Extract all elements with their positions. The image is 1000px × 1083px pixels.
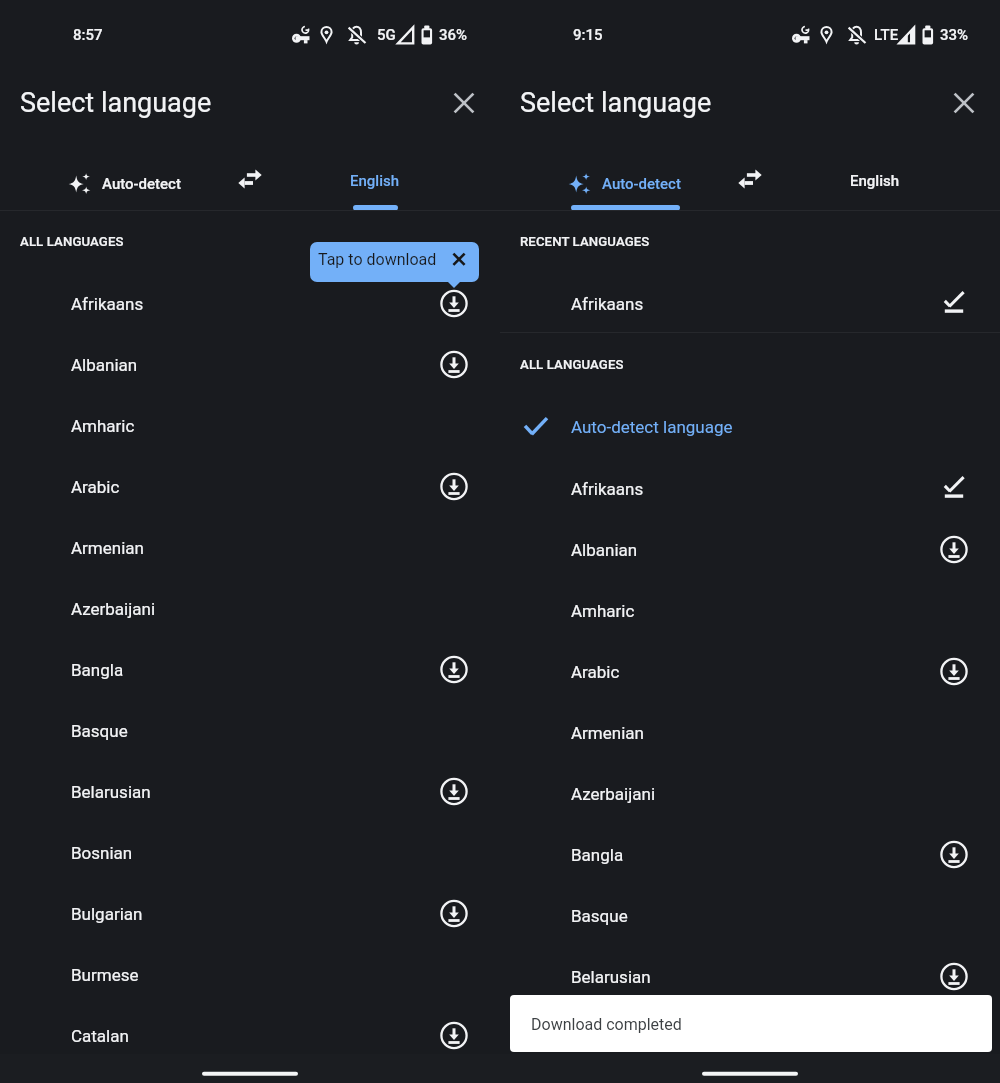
button[interactable]: Download Belarusian bbox=[430, 768, 478, 816]
staticText: English bbox=[350, 172, 400, 190]
button[interactable]: Afrikaans bbox=[0, 273, 500, 334]
staticText: Basque bbox=[71, 721, 128, 741]
staticText: Afrikaans bbox=[71, 294, 144, 314]
button[interactable]: Azerbaijani bbox=[500, 763, 1000, 824]
button[interactable]: Afrikaans bbox=[500, 458, 1000, 519]
button[interactable]: Download completed bbox=[510, 995, 992, 1052]
button[interactable]: Tap to download bbox=[310, 242, 479, 282]
staticText: Azerbaijani bbox=[71, 599, 156, 619]
staticText: 5G bbox=[377, 26, 396, 44]
staticText: Burmese bbox=[71, 965, 139, 985]
button[interactable]: Auto-detect bbox=[60, 152, 190, 210]
button[interactable]: Auto-detect bbox=[560, 152, 690, 210]
button[interactable]: Download Albanian bbox=[930, 526, 978, 574]
staticText: Basque bbox=[571, 906, 628, 926]
staticText: Afrikaans bbox=[571, 479, 644, 499]
staticText: Download completed bbox=[531, 1015, 682, 1034]
staticText: Armenian bbox=[71, 538, 144, 558]
button[interactable]: Basque bbox=[500, 885, 1000, 946]
button[interactable]: Swap languages bbox=[226, 155, 274, 203]
button[interactable]: Arabic bbox=[0, 456, 500, 517]
button[interactable]: Download Bulgarian bbox=[430, 890, 478, 938]
staticText: Auto-detect bbox=[102, 175, 181, 193]
button[interactable]: Download Bangla bbox=[930, 831, 978, 879]
button[interactable]: Download Bangla bbox=[430, 646, 478, 694]
staticText: Select language bbox=[20, 87, 212, 119]
staticText: English bbox=[850, 172, 900, 190]
button[interactable]: Amharic bbox=[500, 580, 1000, 641]
button[interactable]: Download Arabic bbox=[430, 463, 478, 511]
button[interactable]: English bbox=[830, 152, 920, 210]
staticText: Catalan bbox=[71, 1026, 129, 1046]
staticText: Azerbaijani bbox=[571, 784, 656, 804]
staticText: RECENT LANGUAGES bbox=[520, 234, 650, 249]
button[interactable]: Albanian bbox=[0, 334, 500, 395]
staticText: Select language bbox=[520, 87, 712, 119]
staticText: Auto-detect bbox=[602, 175, 681, 193]
staticText: Bulgarian bbox=[71, 904, 143, 924]
staticText: ALL LANGUAGES bbox=[20, 234, 124, 249]
button[interactable]: Albanian bbox=[500, 519, 1000, 580]
staticText: Amharic bbox=[571, 601, 635, 621]
button[interactable]: Afrikaans downloaded bbox=[930, 280, 978, 328]
button[interactable]: Amharic bbox=[0, 395, 500, 456]
staticText: Arabic bbox=[71, 477, 120, 497]
staticText: Bangla bbox=[571, 845, 624, 865]
button[interactable]: Bangla bbox=[0, 639, 500, 700]
button[interactable]: Armenian bbox=[0, 517, 500, 578]
button[interactable]: English bbox=[330, 152, 420, 210]
staticText: 8:57 bbox=[73, 26, 103, 44]
staticText: Arabic bbox=[571, 662, 620, 682]
button[interactable]: Catalan bbox=[0, 1005, 500, 1066]
button[interactable]: Download Afrikaans bbox=[430, 280, 478, 328]
button[interactable]: Download Belarusian bbox=[930, 953, 978, 1001]
button[interactable]: Close bbox=[440, 79, 488, 127]
staticText: Afrikaans bbox=[571, 294, 644, 314]
staticText: Albanian bbox=[571, 540, 638, 560]
button[interactable]: Download Catalan bbox=[430, 1012, 478, 1060]
staticText: ALL LANGUAGES bbox=[520, 357, 624, 372]
staticText: 36% bbox=[439, 26, 468, 44]
staticText: Belarusian bbox=[571, 967, 651, 987]
button[interactable]: Download Arabic bbox=[930, 648, 978, 696]
button[interactable]: Bangla bbox=[500, 824, 1000, 885]
button[interactable]: Afrikaans bbox=[500, 273, 1000, 334]
button[interactable]: Afrikaans downloaded bbox=[930, 465, 978, 513]
staticText: Bangla bbox=[71, 660, 124, 680]
button[interactable]: Azerbaijani bbox=[0, 578, 500, 639]
button[interactable]: Belarusian bbox=[0, 761, 500, 822]
staticText: Armenian bbox=[571, 723, 644, 743]
button[interactable]: Bosnian bbox=[0, 822, 500, 883]
staticText: Amharic bbox=[71, 416, 135, 436]
button[interactable]: Download Albanian bbox=[430, 341, 478, 389]
button[interactable]: Bulgarian bbox=[0, 883, 500, 944]
staticText: Belarusian bbox=[71, 782, 151, 802]
staticText: Auto-detect language bbox=[571, 417, 733, 437]
button[interactable]: Swap languages bbox=[726, 155, 774, 203]
button[interactable]: Burmese bbox=[0, 944, 500, 1005]
staticText: 33% bbox=[940, 26, 969, 44]
button[interactable]: Close bbox=[940, 79, 988, 127]
button[interactable]: Basque bbox=[0, 700, 500, 761]
staticText: 9:15 bbox=[573, 26, 603, 44]
button[interactable]: Arabic bbox=[500, 641, 1000, 702]
staticText: Albanian bbox=[71, 355, 138, 375]
button[interactable]: Auto-detect language bbox=[500, 396, 1000, 457]
button[interactable]: Armenian bbox=[500, 702, 1000, 763]
staticText: LTE bbox=[874, 26, 899, 44]
button[interactable]: Belarusian bbox=[500, 946, 1000, 1007]
staticText: Bosnian bbox=[71, 843, 133, 863]
staticText: Tap to download bbox=[318, 250, 437, 269]
